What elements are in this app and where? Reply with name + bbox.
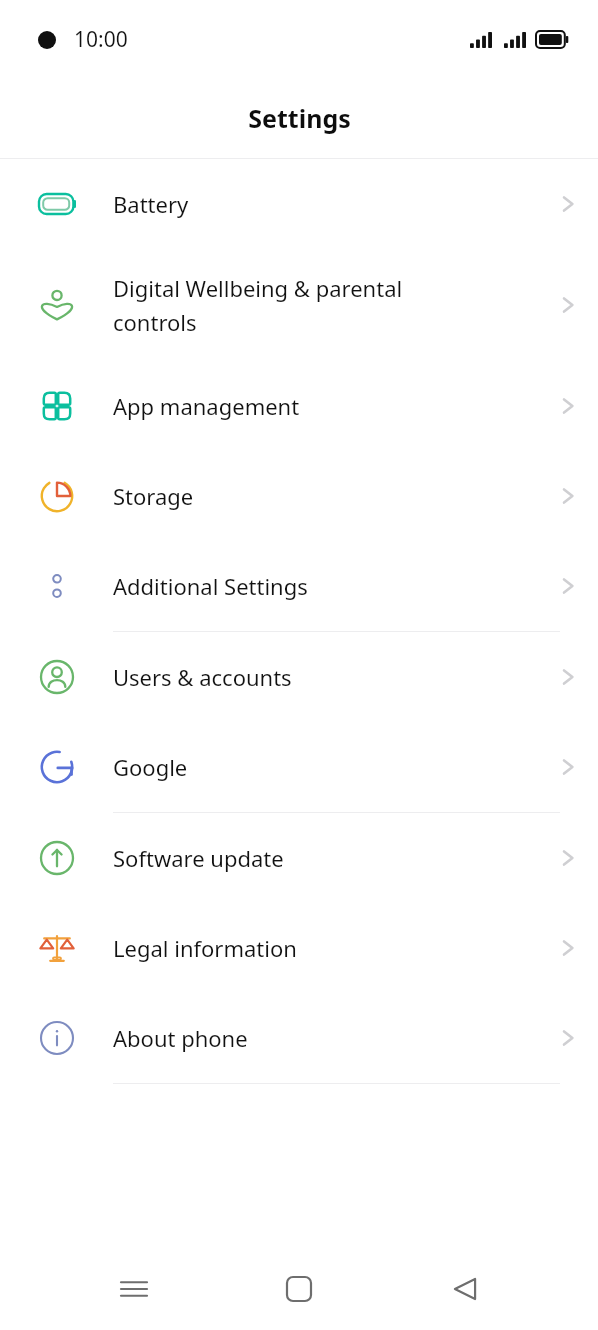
- staticText: Settings: [248, 101, 351, 135]
- staticText: 10:00: [74, 25, 128, 54]
- button[interactable]: About phone: [0, 993, 598, 1083]
- staticText: Storage: [113, 481, 526, 511]
- button[interactable]: Software update: [0, 813, 598, 903]
- button[interactable]: Legal information: [0, 903, 598, 993]
- button[interactable]: Battery: [0, 159, 598, 249]
- staticText: About phone: [113, 1023, 526, 1053]
- button[interactable]: Back: [433, 1257, 497, 1321]
- staticText: Google: [113, 752, 526, 782]
- staticText: Battery: [113, 189, 526, 219]
- button[interactable]: App management: [0, 361, 598, 451]
- staticText: Users & accounts: [113, 662, 526, 692]
- staticText: Digital Wellbeing & parental controls: [113, 273, 526, 337]
- button[interactable]: Additional Settings: [0, 541, 598, 631]
- button[interactable]: Storage: [0, 451, 598, 541]
- button[interactable]: Home: [267, 1257, 331, 1321]
- button[interactable]: Recent apps: [102, 1257, 166, 1321]
- button[interactable]: Users & accounts: [0, 632, 598, 722]
- staticText: Software update: [113, 843, 526, 873]
- staticText: App management: [113, 391, 526, 421]
- staticText: Additional Settings: [113, 571, 526, 601]
- staticText: Legal information: [113, 933, 526, 963]
- button[interactable]: Google: [0, 722, 598, 812]
- button[interactable]: Digital Wellbeing & parental controls: [0, 249, 598, 361]
